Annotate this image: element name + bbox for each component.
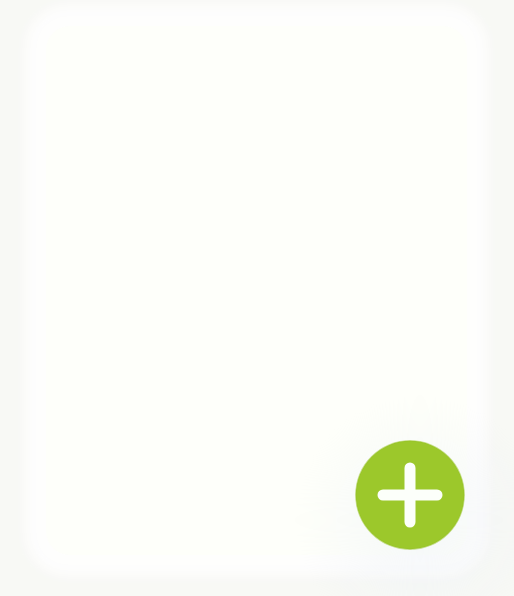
button[interactable]: Add — [355, 440, 465, 550]
